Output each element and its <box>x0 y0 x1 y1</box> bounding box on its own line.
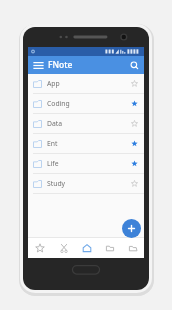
button[interactable]: Unstar Ent <box>126 134 142 153</box>
button[interactable]: Star App <box>126 74 142 93</box>
button[interactable]: Search <box>124 56 144 74</box>
button[interactable]: Study <box>28 174 144 193</box>
staticText: Life <box>47 159 126 168</box>
button[interactable]: Archive <box>121 237 144 258</box>
staticText: FNote <box>48 59 124 71</box>
staticText: Coding <box>47 99 126 108</box>
button[interactable]: Unstar Life <box>126 154 142 173</box>
button[interactable]: Favorites <box>28 237 52 258</box>
button[interactable]: Folders <box>98 237 121 258</box>
button[interactable]: Open navigation menu <box>28 56 48 74</box>
button[interactable]: Star Data <box>126 114 142 133</box>
button[interactable]: Star Study <box>126 174 142 193</box>
button[interactable]: Add note <box>122 219 141 238</box>
staticText: App <box>47 79 126 88</box>
button[interactable]: Coding <box>28 94 144 113</box>
staticText: Study <box>47 179 126 188</box>
button[interactable]: Home <box>75 237 98 258</box>
button[interactable]: Life <box>28 154 144 173</box>
button[interactable]: Ent <box>28 134 144 153</box>
button[interactable]: Unstar Coding <box>126 94 142 113</box>
button[interactable]: Data <box>28 114 144 133</box>
staticText: Ent <box>47 139 126 148</box>
staticText: Data <box>47 119 126 128</box>
button[interactable]: Clip <box>52 237 75 258</box>
button[interactable]: App <box>28 74 144 93</box>
